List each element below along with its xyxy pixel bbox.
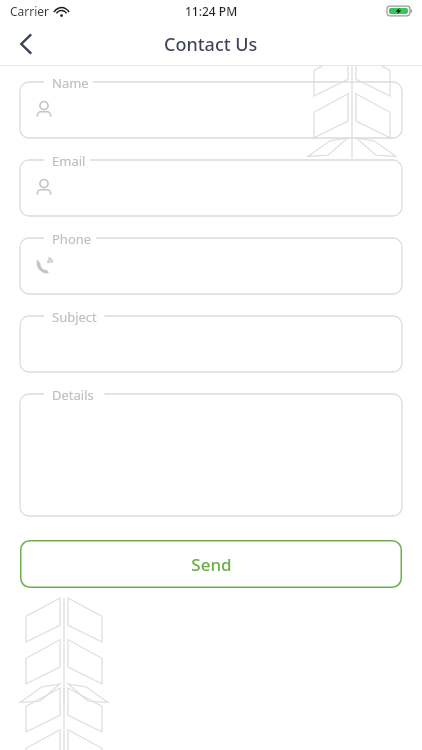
staticText: Name bbox=[52, 74, 89, 92]
button[interactable]: Send bbox=[20, 540, 402, 588]
staticText: 11:24 PM bbox=[185, 3, 238, 19]
button[interactable]: Email bbox=[20, 160, 402, 216]
staticText: Phone bbox=[52, 230, 92, 248]
staticText: Contact Us bbox=[164, 32, 258, 57]
button[interactable]: Details bbox=[20, 394, 402, 516]
staticText: Email bbox=[52, 152, 86, 170]
staticText: Carrier bbox=[10, 3, 50, 19]
other: Phone bbox=[30, 252, 58, 280]
button[interactable]: Name bbox=[20, 82, 402, 138]
staticText: Send bbox=[191, 553, 232, 576]
button[interactable]: Subject bbox=[20, 316, 402, 372]
other: Name bbox=[30, 96, 58, 124]
button[interactable]: Phone bbox=[20, 238, 402, 294]
other: Email bbox=[30, 174, 58, 202]
button[interactable]: Back bbox=[0, 22, 52, 66]
staticText: Details bbox=[52, 386, 94, 404]
staticText: Subject bbox=[52, 308, 97, 326]
